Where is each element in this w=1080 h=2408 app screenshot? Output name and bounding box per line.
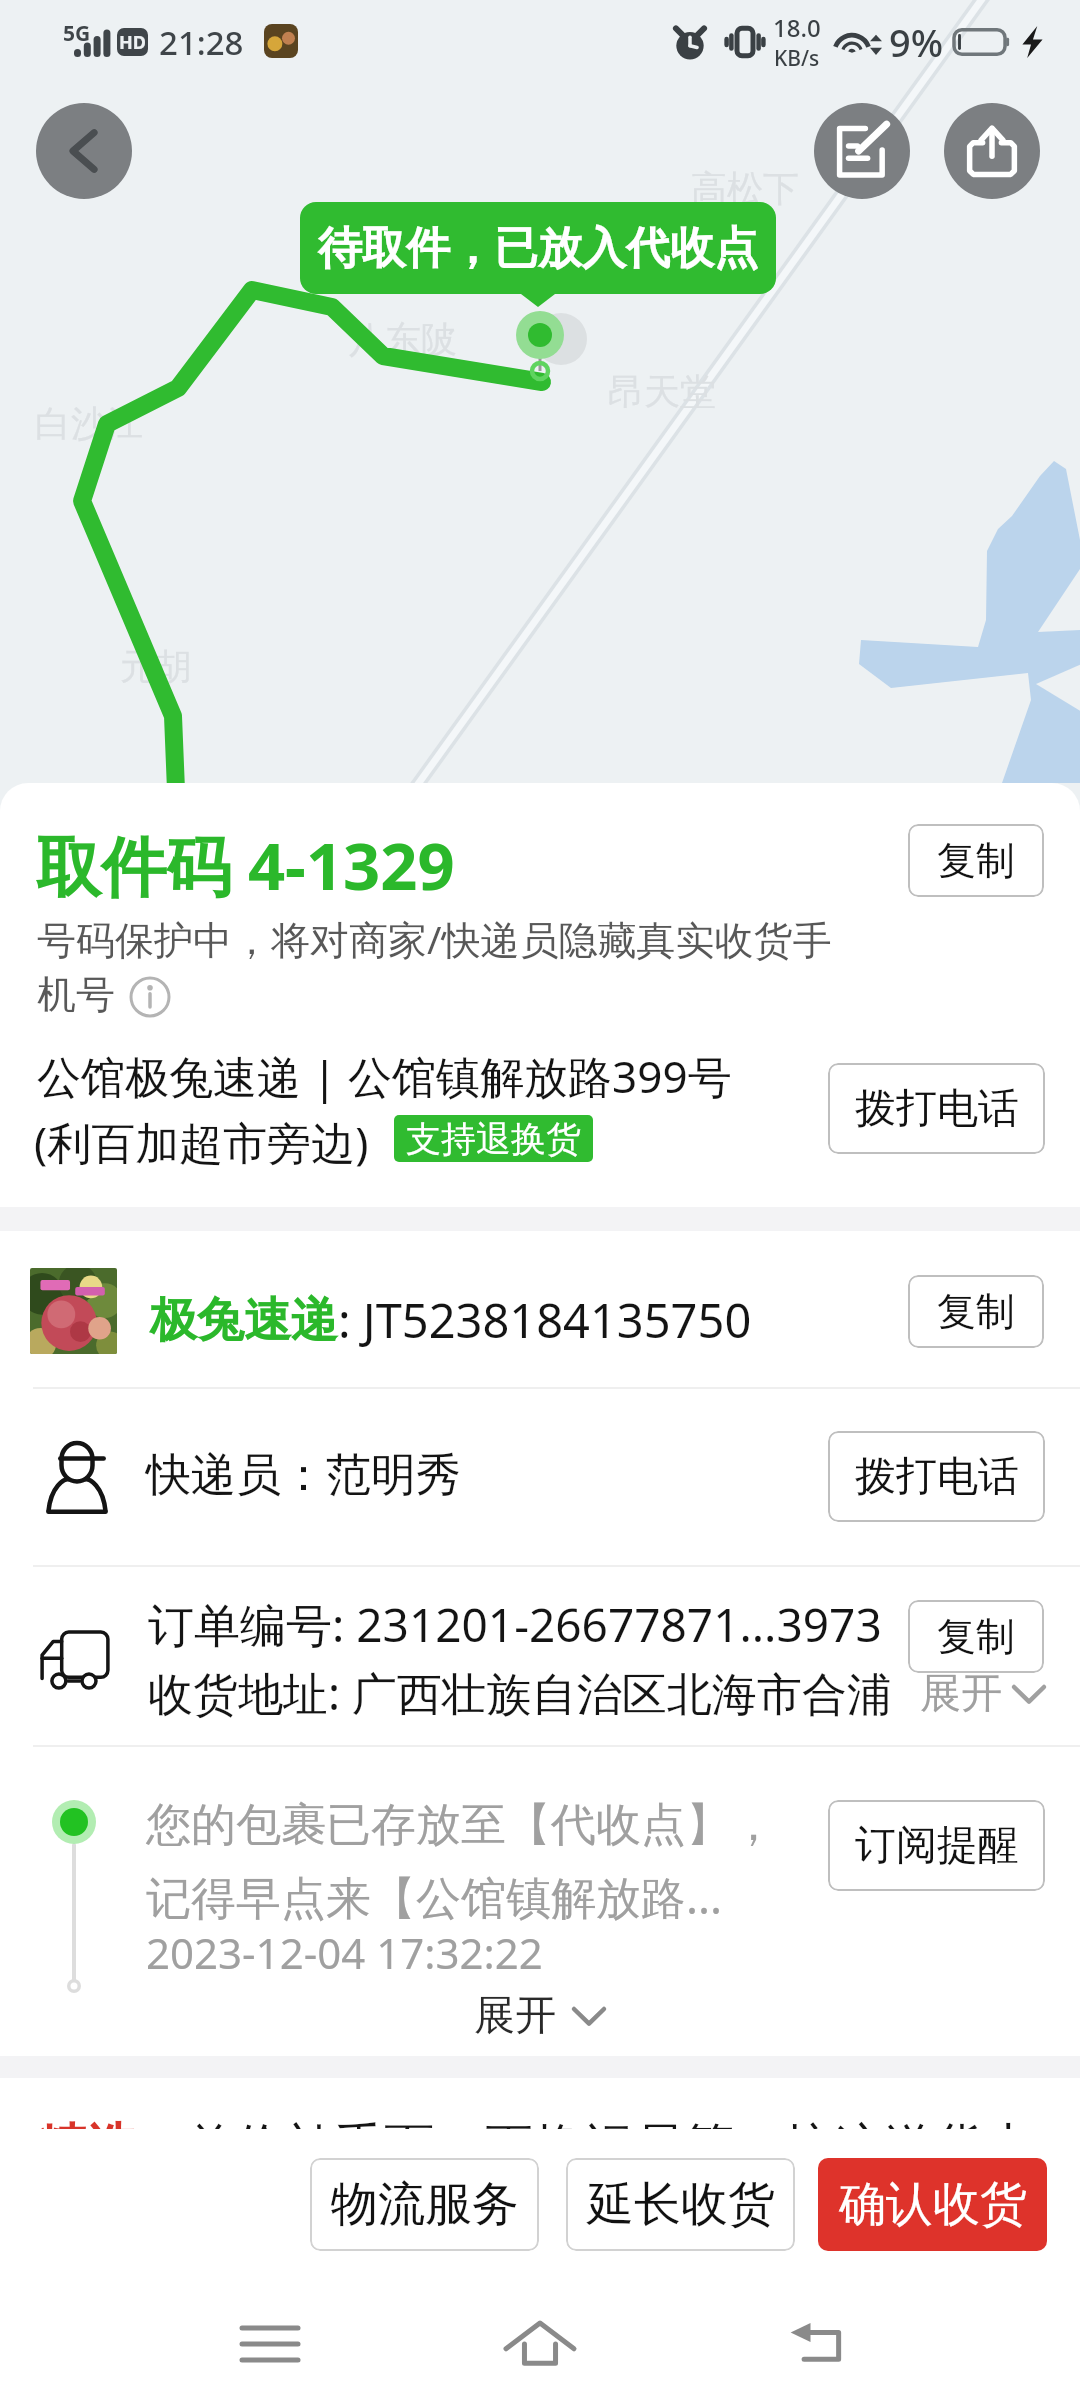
staticText: (利百加超市旁边) xyxy=(34,1112,369,1172)
staticText: 展开 xyxy=(920,1668,1002,1720)
staticText: 延长收货 xyxy=(587,2175,775,2234)
button[interactable]: 展开 xyxy=(920,1668,1046,1720)
staticText: 您的包裹已存放至【代收点】， xyxy=(146,1797,776,1854)
button[interactable]: 复制 xyxy=(908,824,1044,897)
button[interactable]: Back xyxy=(758,2280,886,2408)
button[interactable]: 支持退换货 xyxy=(406,1115,581,1162)
staticText: 21:28 xyxy=(159,20,244,65)
button[interactable]: Edit note xyxy=(814,103,910,199)
button[interactable]: Home xyxy=(476,2280,604,2408)
staticText: 公馆极兔速递 | 公馆镇解放路399号 xyxy=(37,1046,732,1106)
staticText: 18.0 xyxy=(773,11,821,44)
button[interactable]: 订阅提醒 xyxy=(828,1800,1045,1891)
staticText: KB/s xyxy=(774,44,820,73)
button[interactable]: 复制 xyxy=(908,1275,1044,1348)
staticText: 复制 xyxy=(937,1287,1015,1336)
button[interactable]: 确认收货 xyxy=(818,2158,1047,2251)
staticText: 差价补手面，更换运易等，接这送货上 xyxy=(184,2116,1034,2179)
button[interactable]: Share xyxy=(944,103,1040,199)
staticText: 5G xyxy=(63,19,91,48)
staticText: 白沙江 xyxy=(35,401,143,446)
staticText: 元胡 xyxy=(120,644,192,689)
staticText: 复制 xyxy=(937,1612,1015,1661)
staticText: 八东陂 xyxy=(349,317,457,362)
staticText: 展开 xyxy=(474,1990,556,2042)
staticText: 快递员：范明秀 xyxy=(146,1447,461,1504)
staticText: 9% xyxy=(889,16,944,68)
staticText: 待取件，已放入代收点 xyxy=(318,221,758,276)
staticText: 精选 xyxy=(36,2116,136,2179)
staticText: 号码保护中，将对商家/快递员隐藏真实收货手 xyxy=(37,912,832,965)
staticText: 订单编号: 231201-26677871...3973 xyxy=(148,1593,882,1656)
staticText: : JT5238184135750 xyxy=(338,1288,752,1352)
staticText: 高松下 xyxy=(691,166,799,211)
staticText: 复制 xyxy=(937,836,1015,885)
staticText: HD xyxy=(119,30,146,55)
staticText: 拨打电话 xyxy=(855,1083,1019,1135)
button[interactable]: 待取件，已放入代收点 xyxy=(300,202,776,294)
button[interactable]: 复制 xyxy=(908,1600,1044,1673)
staticText: 记得早点来【公馆镇解放路... xyxy=(146,1866,723,1927)
staticText: 订阅提醒 xyxy=(855,1820,1019,1872)
button[interactable]: 拨打电话 xyxy=(828,1063,1045,1154)
button[interactable]: Recent apps xyxy=(206,2280,334,2408)
button[interactable]: Back xyxy=(36,103,132,199)
staticText: 拨打电话 xyxy=(855,1451,1019,1503)
staticText: 2023-12-04 17:32:22 xyxy=(146,1924,543,1981)
staticText: 收货地址: 广西壮族自治区北海市合浦 xyxy=(148,1662,892,1723)
button[interactable]: 物流服务 xyxy=(310,2158,539,2251)
button[interactable]: 拨打电话 xyxy=(828,1431,1045,1522)
staticText: 物流服务 xyxy=(331,2175,519,2234)
button[interactable]: 延长收货 xyxy=(566,2158,795,2251)
staticText: 极兔速递 xyxy=(150,1291,338,1350)
staticText: 支持退换货 xyxy=(406,1117,581,1161)
staticText: 机号 xyxy=(37,970,115,1019)
button[interactable]: 展开 xyxy=(0,1988,1080,2044)
staticText: 昂天堂 xyxy=(608,369,716,414)
staticText: 确认收货 xyxy=(839,2175,1027,2234)
staticText: 取件码 4-1329 xyxy=(36,821,455,910)
